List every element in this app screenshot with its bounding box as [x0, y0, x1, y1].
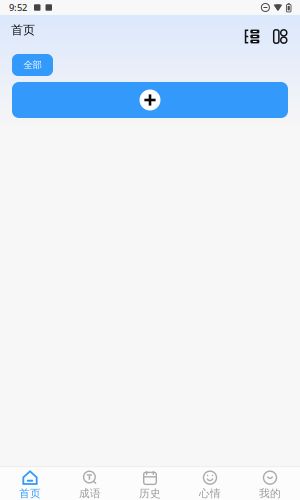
- button[interactable]: 首页: [0, 466, 60, 500]
- button[interactable]: 布局: [271, 28, 289, 45]
- staticText: 首页: [11, 23, 35, 37]
- button[interactable]: 分类: [242, 27, 261, 45]
- staticText: 9:52: [9, 1, 27, 14]
- button[interactable]: 我的: [240, 466, 300, 500]
- staticText: 首页: [19, 487, 41, 500]
- staticText: 历史: [139, 487, 161, 500]
- button[interactable]: 全部: [12, 54, 53, 76]
- staticText: 成语: [79, 487, 101, 500]
- button[interactable]: 历史: [120, 466, 180, 500]
- staticText: 心情: [199, 487, 221, 500]
- staticText: 我的: [259, 487, 281, 500]
- staticText: 全部: [23, 59, 41, 71]
- button[interactable]: 成语: [60, 466, 120, 500]
- button[interactable]: 心情: [180, 466, 240, 500]
- button[interactable]: 添加: [12, 82, 288, 118]
